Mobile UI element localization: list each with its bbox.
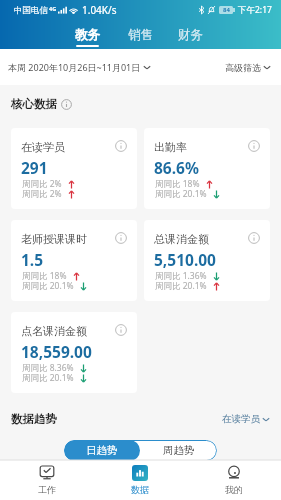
staticText: 教务 [75, 27, 100, 43]
staticText: 5,510.00 [154, 249, 216, 270]
button[interactable]: 总课消金额 [144, 220, 270, 301]
staticText: 在读学员 [222, 413, 260, 425]
staticText: 1.04K/s [82, 3, 117, 17]
button[interactable]: 本周 2020年10月26日~11月01日 [8, 61, 151, 73]
staticText: 4G [49, 5, 57, 12]
staticText: 老师授课课时 [21, 232, 87, 246]
button[interactable]: 教务 [75, 27, 100, 47]
staticText: 周同比 2% [22, 178, 62, 190]
staticText: 中国电信 [14, 5, 48, 16]
staticText: 点名课消金额 [21, 324, 87, 338]
staticText: 数据趋势 [11, 412, 57, 426]
staticText: 周同比 20.1% [155, 188, 207, 200]
staticText: 出勤率 [154, 140, 187, 154]
staticText: 周同比 18% [22, 270, 67, 282]
button[interactable]: 财务 [178, 27, 203, 45]
staticText: 1.5 [21, 249, 44, 270]
staticText: 84 [223, 6, 230, 14]
staticText: 核心数据 [11, 97, 57, 111]
staticText: 18,559.00 [21, 341, 92, 362]
button[interactable]: 周趋势 [140, 440, 217, 461]
button[interactable]: 销售 [128, 27, 153, 45]
button[interactable]: 数据 [93, 460, 187, 500]
other: 工作 [39, 465, 55, 481]
staticText: 工作 [38, 484, 56, 495]
staticText: 周同比 20.1% [22, 280, 74, 292]
staticText: 周同比 1.36% [155, 270, 207, 282]
button[interactable]: 高级筛选 [225, 62, 271, 73]
other: 数据 [132, 465, 148, 481]
staticText: 周同比 8.36% [22, 362, 74, 374]
button[interactable]: 在读学员 [222, 413, 270, 425]
staticText: 周同比 2% [22, 188, 62, 200]
other: 我的 [226, 465, 242, 481]
staticText: 周同比 20.1% [22, 372, 74, 384]
staticText: 周同比 18% [155, 178, 200, 190]
staticText: 财务 [178, 27, 203, 43]
button[interactable]: 我的 [187, 460, 281, 500]
staticText: 下午2:17 [238, 4, 272, 16]
staticText: 日趋势 [86, 444, 118, 457]
button[interactable]: 工作 [0, 460, 93, 500]
staticText: 我的 [225, 484, 243, 495]
button[interactable]: 日趋势 [64, 440, 140, 461]
staticText: 总课消金额 [154, 232, 209, 246]
staticText: 291 [21, 157, 48, 178]
staticText: 高级筛选 [225, 62, 261, 73]
button[interactable]: 在读学员 [11, 128, 137, 209]
staticText: 86.6% [154, 157, 199, 178]
staticText: 周同比 20.1% [155, 280, 207, 292]
staticText: 销售 [128, 27, 153, 43]
staticText: 本周 2020年10月26日~11月01日 [8, 61, 141, 73]
button[interactable]: 出勤率 [144, 128, 270, 209]
button[interactable]: 点名课消金额 [11, 312, 137, 393]
staticText: 数据 [131, 484, 149, 495]
staticText: 周趋势 [163, 444, 195, 457]
staticText: 在读学员 [21, 140, 65, 154]
button[interactable]: 老师授课课时 [11, 220, 137, 301]
